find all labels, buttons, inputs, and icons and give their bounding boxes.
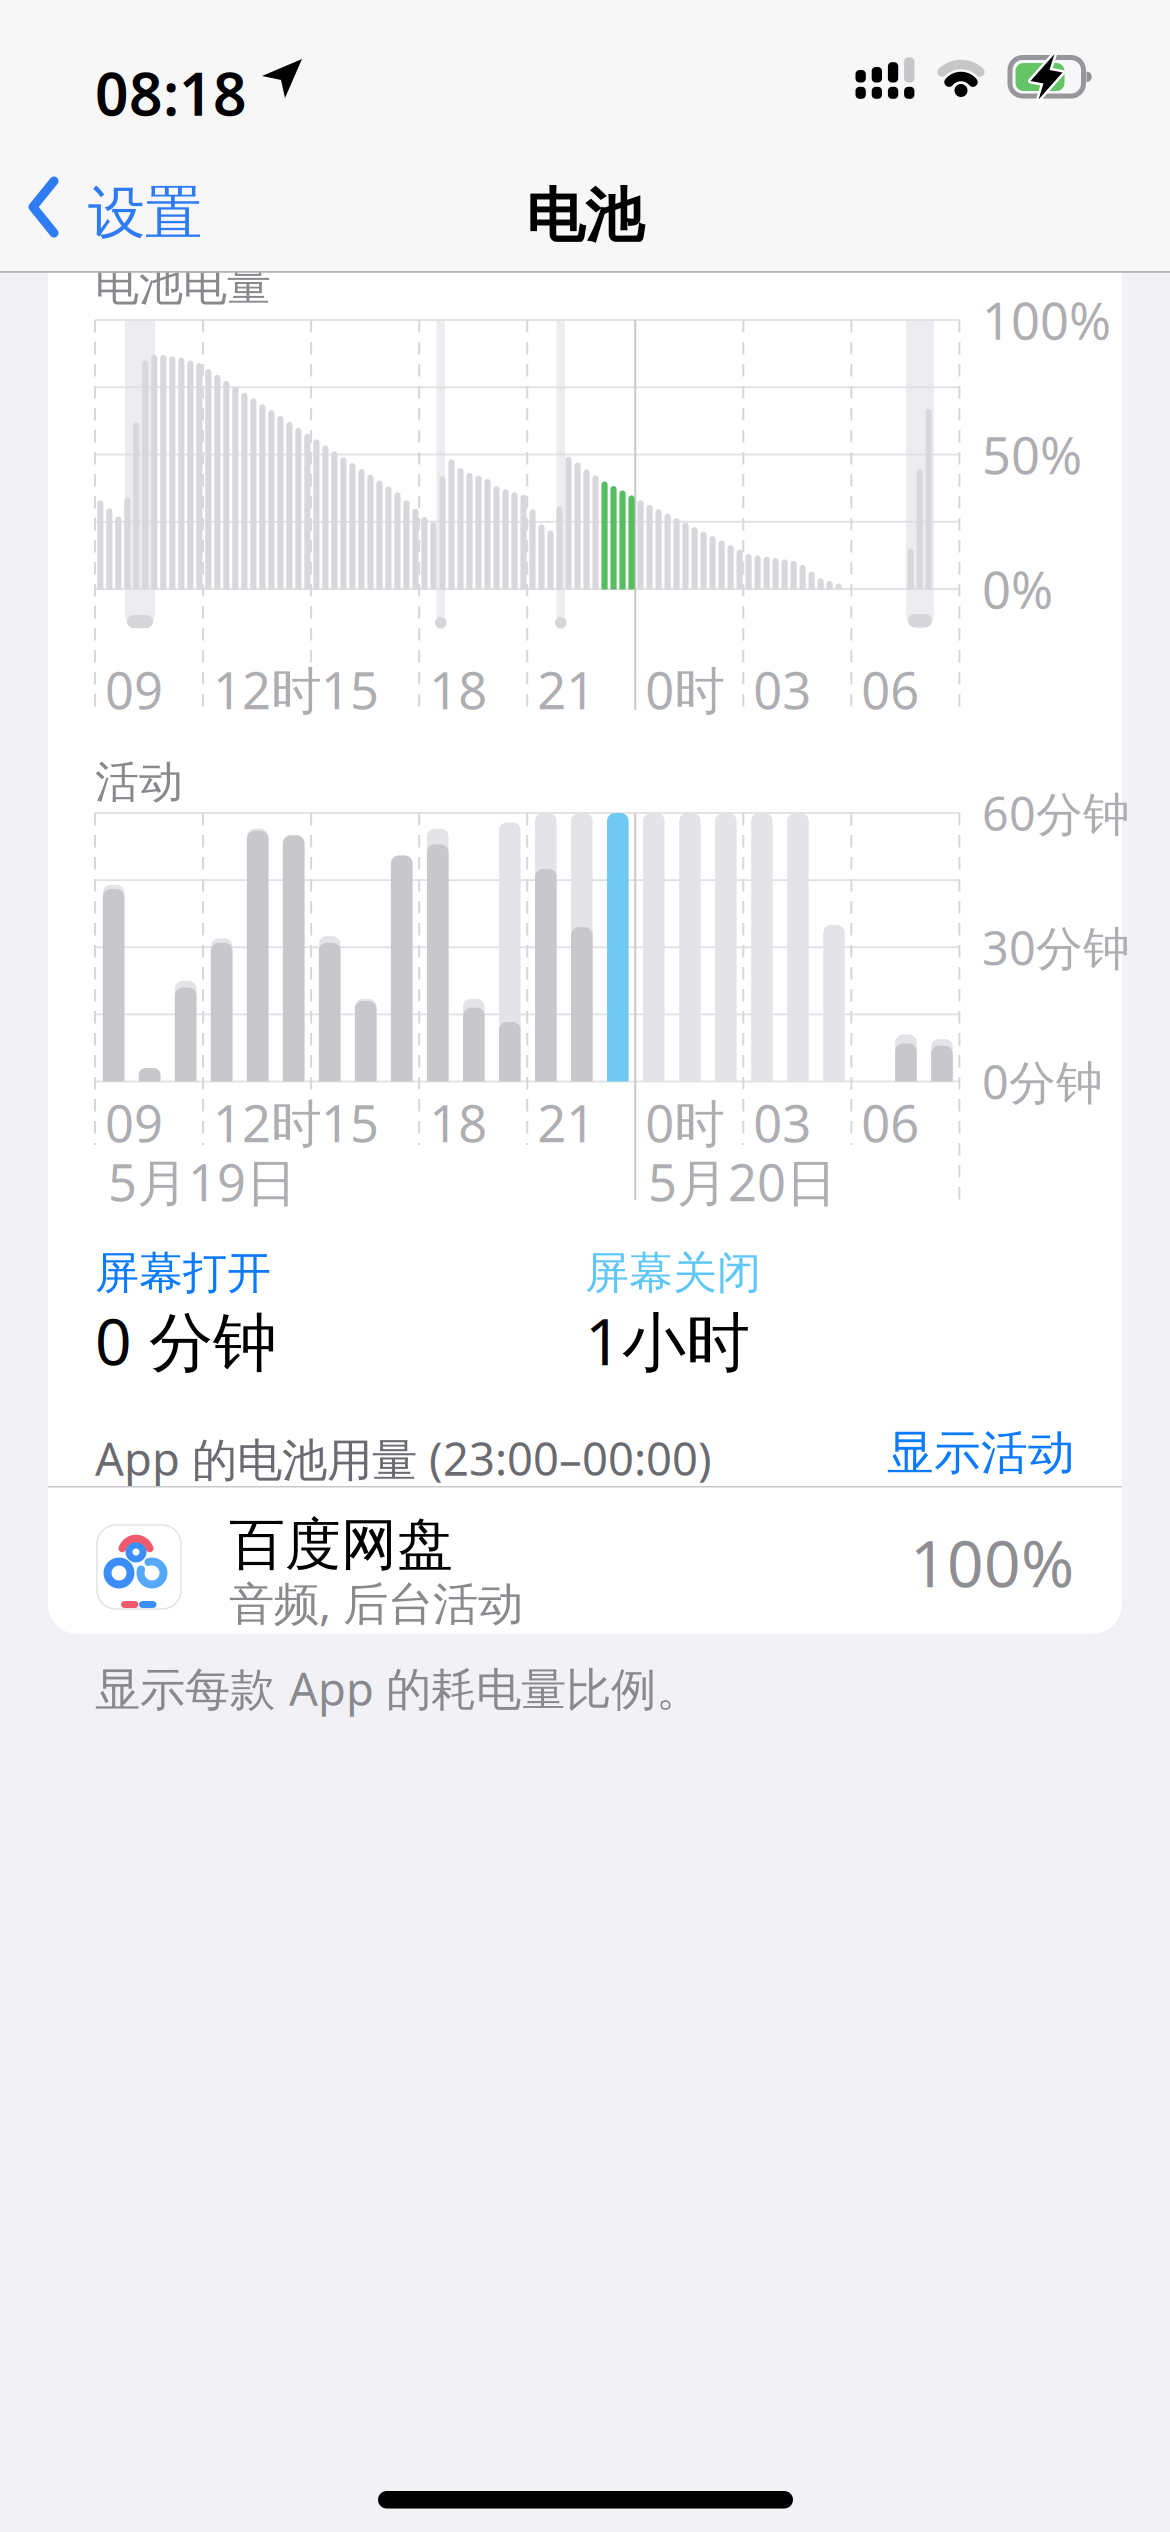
staticText: 0分钟 <box>982 1050 1103 1112</box>
staticText: 21 <box>537 1089 595 1156</box>
staticText: 21 <box>537 656 595 723</box>
staticText: 12时 <box>213 656 322 723</box>
staticText: 电池 <box>526 180 644 252</box>
staticText: 显示每款 App 的耗电量比例。 <box>95 1658 701 1718</box>
staticText: 1小时 <box>585 1298 750 1383</box>
staticText: 06 <box>861 656 919 723</box>
staticText: 09 <box>105 1089 163 1156</box>
button[interactable]: 返回设置 <box>30 178 190 236</box>
staticText: 50% <box>982 421 1082 488</box>
staticText: 100% <box>910 1520 1074 1605</box>
button[interactable]: 百度网盘 <box>48 1487 1122 1633</box>
staticText: 18 <box>429 656 487 723</box>
staticText: App 的电池用量 (23:00–00:00) <box>95 1428 712 1488</box>
staticText: 15 <box>321 656 379 723</box>
staticText: 显示活动 <box>887 1424 1075 1482</box>
staticText: 百度网盘 <box>229 1510 453 1579</box>
staticText: 0 分钟 <box>95 1298 277 1383</box>
staticText: 电池电量 <box>95 258 271 312</box>
staticText: 30分钟 <box>982 916 1130 978</box>
staticText: 0时 <box>645 1089 725 1156</box>
staticText: 屏幕打开 <box>95 1246 271 1300</box>
staticText: 0时 <box>645 656 725 723</box>
staticText: 60分钟 <box>982 782 1130 844</box>
staticText: 音频, 后台活动 <box>229 1572 523 1633</box>
staticText: 03 <box>753 1089 811 1156</box>
staticText: 设置 <box>88 178 202 248</box>
staticText: 0% <box>982 555 1053 623</box>
staticText: 15 <box>321 1089 379 1156</box>
staticText: 5月19日 <box>108 1148 297 1215</box>
staticText: 活动 <box>95 755 183 809</box>
staticText: 屏幕关闭 <box>585 1246 761 1300</box>
staticText: 08:18 <box>95 54 247 132</box>
staticText: 03 <box>753 656 811 723</box>
staticText: 12时 <box>213 1089 322 1156</box>
staticText: 09 <box>105 656 163 723</box>
button[interactable]: 显示活动 <box>775 1428 1075 1478</box>
staticText: 06 <box>861 1089 919 1156</box>
staticText: 5月20日 <box>648 1148 837 1215</box>
staticText: 18 <box>429 1089 487 1156</box>
staticText: 100% <box>982 286 1111 354</box>
